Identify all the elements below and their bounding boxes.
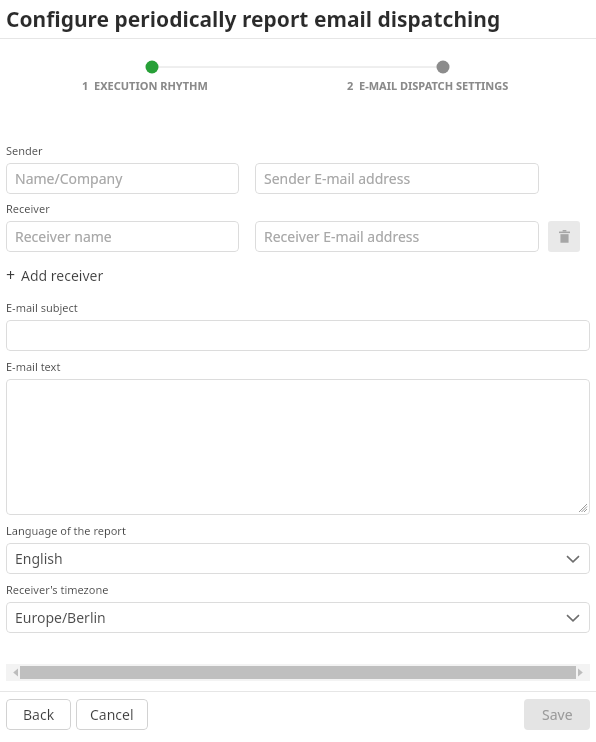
button[interactable]: Receiver E-mail address <box>255 221 539 252</box>
staticText: English <box>15 549 63 568</box>
staticText: Sender <box>6 143 43 158</box>
staticText: E-mail subject <box>6 300 78 315</box>
staticText: Add receiver <box>21 266 104 285</box>
button[interactable]: + <box>6 264 104 286</box>
button[interactable] <box>6 664 590 681</box>
staticText: Cancel <box>90 705 134 724</box>
button[interactable]: English <box>6 543 590 574</box>
button[interactable]: 2 E-MAIL DISPATCH SETTINGS <box>347 78 509 93</box>
button[interactable]: 1 EXECUTION RHYTHM <box>82 78 208 93</box>
button[interactable]: Sender E-mail address <box>255 163 539 194</box>
staticText: Save <box>542 705 573 724</box>
staticText: Name/Company <box>15 169 123 188</box>
staticText: Configure periodically report email disp… <box>6 5 501 34</box>
staticText: Sender E-mail address <box>264 169 411 188</box>
button[interactable] <box>6 379 590 515</box>
button[interactable]: Cancel <box>76 699 148 730</box>
button[interactable]: Name/Company <box>6 163 239 194</box>
staticText: Europe/Berlin <box>15 608 106 627</box>
staticText: Receiver E-mail address <box>264 227 420 246</box>
staticText: Back <box>23 705 55 724</box>
staticText: + <box>6 264 16 286</box>
button[interactable]: Delete receiver <box>548 221 580 252</box>
button[interactable]: Europe/Berlin <box>6 602 590 633</box>
button[interactable]: Save <box>524 699 590 730</box>
staticText: Receiver name <box>15 227 112 246</box>
staticText: Receiver <box>6 201 50 216</box>
staticText: Receiver's timezone <box>6 582 109 597</box>
staticText: E-mail text <box>6 359 61 374</box>
button[interactable] <box>6 320 590 351</box>
button[interactable]: Back <box>6 699 71 730</box>
staticText: Language of the report <box>6 523 126 538</box>
button[interactable]: Receiver name <box>6 221 239 252</box>
